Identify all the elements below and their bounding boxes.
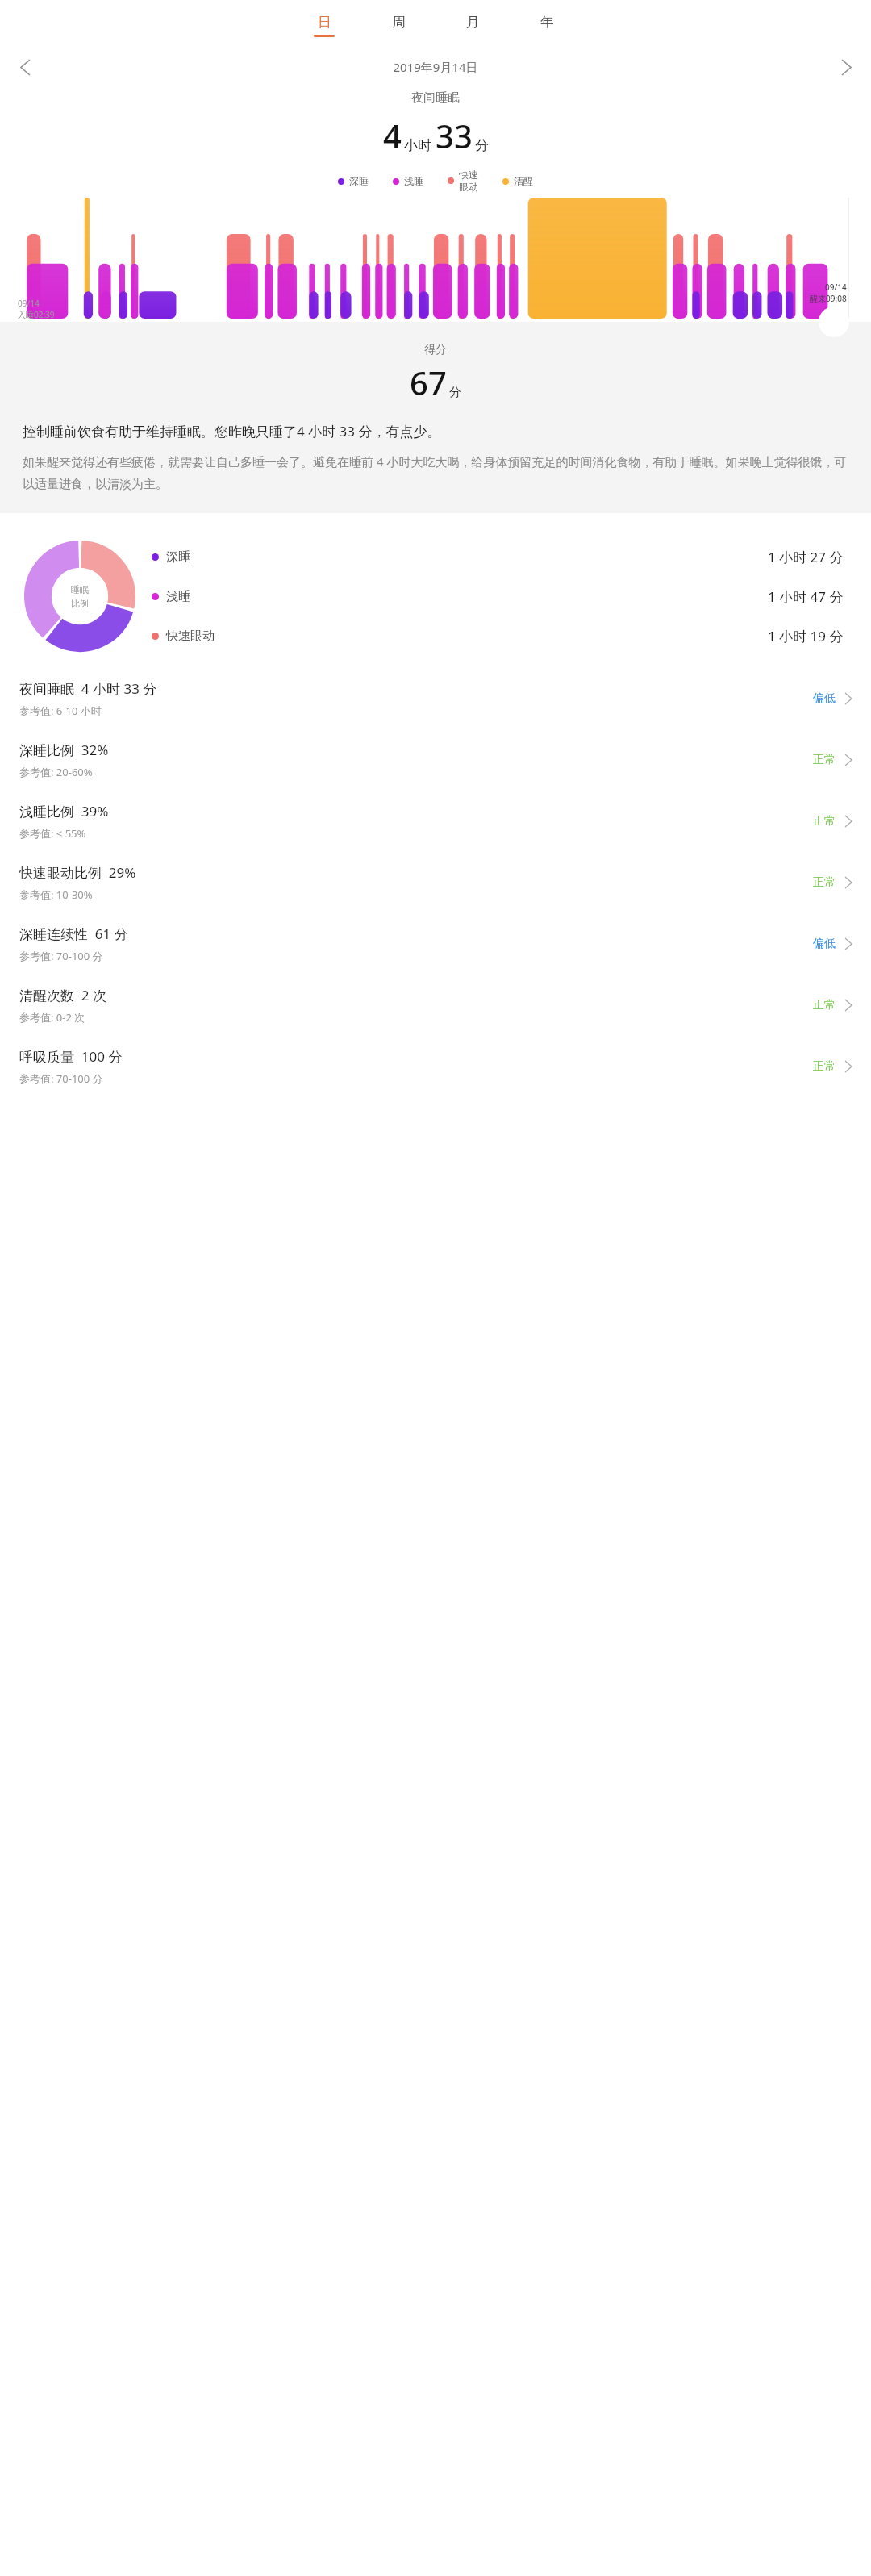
staticText: 小时: [404, 137, 431, 154]
staticText: 年: [540, 14, 554, 31]
staticText: 正常: [813, 753, 836, 767]
button[interactable]: 深睡连续性 61 分: [0, 913, 871, 975]
staticText: 参考值: 20-60%: [19, 765, 93, 779]
staticText: 浅睡: [404, 175, 423, 187]
staticText: 分: [475, 137, 489, 154]
staticText: 正常: [813, 1059, 836, 1074]
staticText: 入睡02:39: [18, 309, 55, 320]
staticText: 分: [449, 385, 461, 400]
staticText: 1 小时 27 分: [768, 548, 844, 566]
staticText: 正常: [813, 875, 836, 890]
button[interactable]: 月: [455, 12, 490, 39]
button[interactable]: Sleep detail: [819, 307, 849, 337]
staticText: 夜间睡眠 4 小时 33 分: [19, 679, 157, 698]
staticText: 参考值: 0-2 次: [19, 1010, 85, 1025]
button[interactable]: 年: [529, 12, 565, 39]
staticText: 参考值: 70-100 分: [19, 949, 103, 963]
staticText: 1 小时 47 分: [768, 587, 844, 606]
staticText: 偏低: [813, 937, 836, 951]
button[interactable]: 浅睡比例 39%: [0, 791, 871, 852]
staticText: 深睡比例 32%: [19, 741, 109, 759]
staticText: 4: [383, 114, 402, 157]
button[interactable]: Next day: [832, 53, 860, 81]
button[interactable]: 清醒次数 2 次: [0, 975, 871, 1036]
staticText: 呼吸质量 100 分: [19, 1047, 123, 1066]
staticText: 醒来09:08: [810, 293, 847, 304]
staticText: 清醒: [514, 175, 533, 187]
button[interactable]: 呼吸质量 100 分: [0, 1036, 871, 1097]
staticText: 67: [410, 361, 447, 404]
staticText: 参考值: 6-10 小时: [19, 703, 102, 718]
staticText: 浅睡: [166, 589, 190, 604]
staticText: 浅睡比例 39%: [19, 802, 109, 820]
staticText: 33: [435, 114, 473, 157]
staticText: 09/14: [825, 282, 847, 293]
staticText: 偏低: [813, 691, 836, 706]
staticText: 比例: [71, 598, 89, 609]
button[interactable]: 夜间睡眠 4 小时 33 分: [0, 668, 871, 729]
staticText: 正常: [813, 998, 836, 1012]
staticText: 09/14: [18, 298, 40, 309]
button[interactable]: 日: [306, 12, 342, 39]
staticText: 深睡连续性 61 分: [19, 925, 128, 943]
staticText: 深睡: [166, 549, 190, 565]
staticText: 如果醒来觉得还有些疲倦，就需要让自己多睡一会了。避免在睡前 4 小时大吃大喝，给…: [23, 453, 848, 492]
staticText: 快速: [459, 169, 478, 181]
staticText: 2019年9月14日: [39, 59, 832, 75]
staticText: 参考值: < 55%: [19, 826, 86, 841]
button[interactable]: 周: [381, 12, 416, 39]
staticText: 快速眼动比例 29%: [19, 863, 136, 882]
staticText: 深睡: [349, 175, 369, 187]
staticText: 眼动: [459, 181, 478, 193]
staticText: 周: [392, 14, 406, 31]
staticText: 正常: [813, 814, 836, 829]
staticText: 清醒次数 2 次: [19, 986, 106, 1004]
staticText: 参考值: 10-30%: [19, 887, 93, 902]
staticText: 月: [466, 14, 480, 31]
staticText: 睡眠: [71, 584, 89, 595]
staticText: 1 小时 19 分: [768, 627, 844, 645]
button[interactable]: 快速眼动比例 29%: [0, 852, 871, 913]
staticText: 日: [318, 14, 331, 31]
staticText: 参考值: 70-100 分: [19, 1071, 103, 1086]
button[interactable]: 深睡比例 32%: [0, 729, 871, 791]
staticText: 快速眼动: [166, 628, 215, 644]
staticText: 夜间睡眠: [411, 90, 460, 106]
staticText: 得分: [424, 343, 447, 357]
button[interactable]: Previous day: [11, 53, 39, 81]
staticText: 控制睡前饮食有助于维持睡眠。您昨晚只睡了4 小时 33 分，有点少。: [23, 422, 441, 440]
